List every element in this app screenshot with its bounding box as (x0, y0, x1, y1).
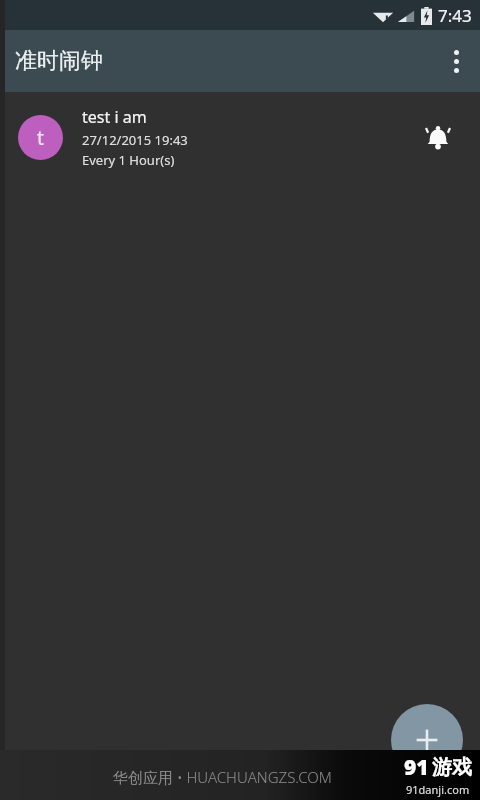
staticText: 游戏 (432, 755, 472, 780)
staticText: 91danji.com (406, 782, 470, 797)
staticText: 准时闹钟 (15, 47, 103, 75)
button[interactable]: Add alarm (391, 704, 463, 776)
button[interactable]: Alarm enabled (414, 113, 462, 161)
staticText: 华创应用 • HUACHUANGZS.COM (113, 767, 332, 787)
staticText: 7:43 (438, 4, 472, 27)
staticText: t (37, 125, 44, 151)
staticText: 27/12/2015 19:43 (82, 131, 188, 149)
button[interactable]: More options (432, 37, 480, 85)
button[interactable]: t (0, 92, 480, 182)
staticText: test i am (82, 106, 147, 128)
staticText: Every 1 Hour(s) (82, 151, 175, 169)
staticText: 91 (404, 753, 429, 782)
